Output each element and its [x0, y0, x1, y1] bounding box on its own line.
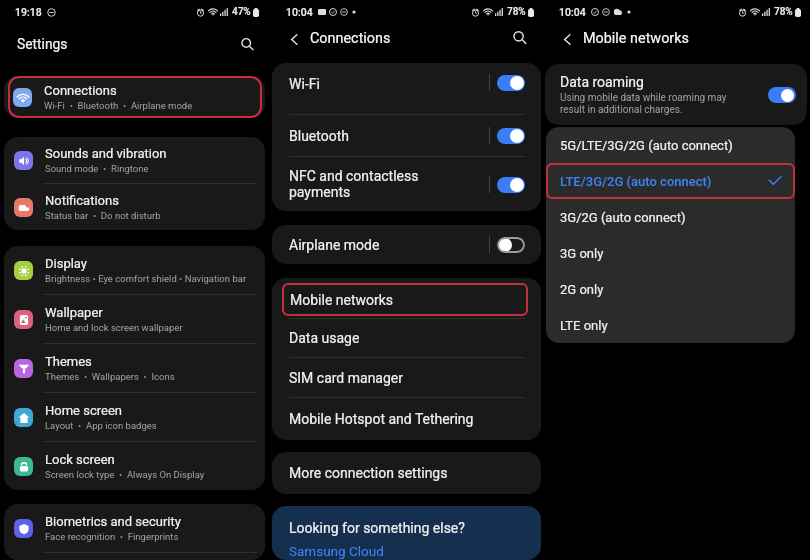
- button[interactable]: Lock screen: [4, 442, 265, 490]
- button[interactable]: 3G/2G (auto connect): [546, 199, 795, 235]
- staticText: Layout • App icon badges: [45, 420, 157, 431]
- button[interactable]: NFC and contactless: [497, 177, 525, 193]
- staticText: 5G/LTE/3G/2G (auto connect): [560, 138, 782, 153]
- staticText: payments: [289, 184, 351, 200]
- staticText: Status bar • Do not disturb: [45, 210, 161, 221]
- staticText: Home and lock screen wallpaper: [45, 322, 183, 333]
- button[interactable]: LTE/3G/2G (auto connect): [546, 163, 795, 199]
- staticText: Mobile networks: [290, 292, 520, 308]
- button[interactable]: Connections: [8, 76, 262, 118]
- staticText: 10:04: [559, 6, 586, 18]
- staticText: 19:18: [15, 6, 42, 18]
- staticText: Brightness • Eye comfort shield • Naviga…: [45, 273, 247, 284]
- button[interactable]: Mobile networks: [282, 283, 528, 316]
- staticText: 3G/2G (auto connect): [560, 210, 782, 225]
- button[interactable]: NFC and contactless: [272, 157, 541, 211]
- button[interactable]: Mobile Hotspot and Tethering: [272, 398, 541, 440]
- staticText: LTE/3G/2G (auto connect): [560, 174, 768, 189]
- button[interactable]: Data roaming: [768, 87, 796, 103]
- staticText: Looking for something else?: [289, 520, 465, 536]
- button[interactable]: Wi-Fi: [497, 75, 525, 91]
- staticText: Connections: [44, 83, 117, 98]
- staticText: Mobile Hotspot and Tethering: [289, 411, 474, 427]
- button[interactable]: Display: [4, 246, 265, 294]
- staticText: Sound mode • Ringtone: [45, 163, 149, 174]
- button[interactable]: Back: [559, 31, 575, 47]
- button[interactable]: Data roaming: [545, 64, 807, 125]
- staticText: More connection settings: [289, 465, 448, 481]
- button[interactable]: More connection settings: [272, 452, 541, 494]
- button[interactable]: Data usage: [272, 319, 541, 357]
- button[interactable]: 5G/LTE/3G/2G (auto connect): [546, 127, 795, 163]
- button[interactable]: Wi-Fi: [272, 63, 541, 114]
- staticText: Notifications: [45, 193, 119, 208]
- staticText: 10:04: [286, 6, 313, 18]
- staticText: Connections: [310, 30, 391, 47]
- staticText: Home screen: [45, 403, 122, 418]
- staticText: Data usage: [289, 330, 360, 346]
- staticText: Using mobile data while roaming may: [560, 92, 727, 104]
- staticText: 3G only: [560, 246, 782, 261]
- button[interactable]: 2G only: [546, 271, 795, 307]
- button[interactable]: Biometrics and security: [4, 504, 265, 552]
- staticText: Wi-Fi • Bluetooth • Airplane mode: [44, 100, 193, 111]
- button[interactable]: Bluetooth: [497, 128, 525, 144]
- staticText: Samsung Cloud: [289, 543, 384, 559]
- button[interactable]: Home screen: [4, 393, 265, 441]
- staticText: Bluetooth: [289, 128, 349, 144]
- button[interactable]: Search: [511, 29, 529, 47]
- staticText: Data roaming: [560, 74, 644, 90]
- staticText: Wallpaper: [45, 305, 103, 320]
- staticText: Face recognition • Fingerprints: [45, 531, 179, 542]
- staticText: Themes • Wallpapers • Icons: [45, 371, 175, 382]
- button[interactable]: Looking for something else?: [272, 506, 541, 560]
- staticText: 2G only: [560, 282, 782, 297]
- staticText: LTE only: [560, 318, 782, 333]
- button[interactable]: LTE only: [546, 307, 795, 343]
- button[interactable]: Wallpaper: [4, 295, 265, 343]
- staticText: 47%: [232, 6, 251, 18]
- staticText: Themes: [45, 354, 92, 369]
- staticText: Biometrics and security: [45, 514, 181, 529]
- button[interactable]: SIM card manager: [272, 358, 541, 397]
- staticText: 78%: [774, 6, 793, 18]
- staticText: SIM card manager: [289, 370, 404, 386]
- button[interactable]: 3G only: [546, 235, 795, 271]
- staticText: Mobile networks: [583, 30, 689, 47]
- staticText: Settings: [17, 36, 68, 52]
- staticText: 78%: [507, 6, 526, 18]
- staticText: Lock screen: [45, 452, 115, 467]
- staticText: Airplane mode: [289, 237, 380, 253]
- staticText: Screen lock type • Always On Display: [45, 469, 205, 480]
- button[interactable]: Airplane mode: [272, 225, 541, 264]
- button[interactable]: Bluetooth: [272, 115, 541, 156]
- button[interactable]: Notifications: [4, 184, 265, 230]
- button[interactable]: Back: [286, 31, 302, 47]
- button[interactable]: Sounds and vibration: [4, 137, 265, 183]
- staticText: Display: [45, 256, 87, 271]
- button[interactable]: Airplane mode: [497, 237, 525, 253]
- staticText: result in additional charges.: [560, 104, 683, 116]
- staticText: Sounds and vibration: [45, 146, 167, 161]
- staticText: NFC and contactless: [289, 168, 419, 184]
- staticText: Wi-Fi: [289, 76, 320, 92]
- button[interactable]: Themes: [4, 344, 265, 392]
- button[interactable]: Search: [237, 34, 257, 54]
